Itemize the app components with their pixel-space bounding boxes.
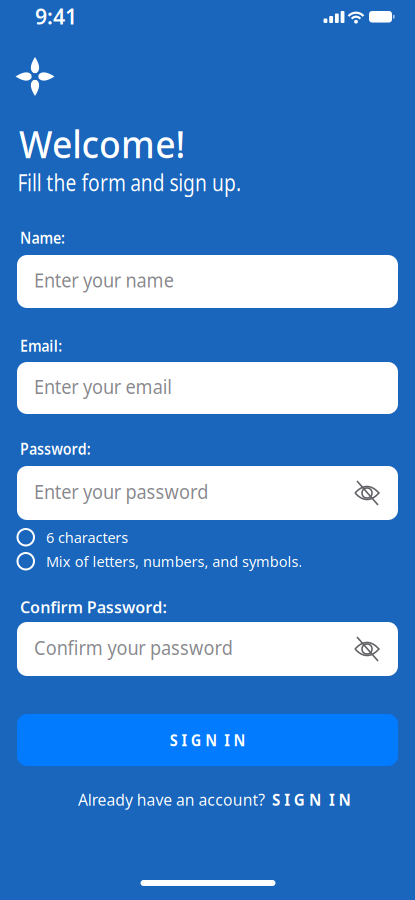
staticText: Email: bbox=[20, 335, 67, 356]
button[interactable]: Confirm your password bbox=[17, 622, 398, 676]
staticText: Mix of letters, numbers, and symbols. bbox=[46, 551, 305, 571]
button[interactable]: Enter your email bbox=[17, 362, 398, 414]
button[interactable]: Show password bbox=[354, 636, 380, 662]
button[interactable]: Show password bbox=[354, 480, 380, 506]
staticText: Fill the form and sign up. bbox=[17, 166, 296, 198]
staticText: S I G N I N bbox=[166, 729, 249, 751]
staticText: Name: bbox=[20, 227, 70, 248]
staticText: Enter your name bbox=[34, 266, 188, 293]
staticText: Enter your password bbox=[34, 478, 226, 504]
staticText: 9:41 bbox=[35, 2, 77, 30]
staticText: Already have an account? bbox=[78, 789, 269, 810]
staticText: Enter your email bbox=[34, 373, 186, 399]
staticText: Confirm your password bbox=[34, 634, 253, 660]
button[interactable]: Enter your password bbox=[17, 466, 398, 520]
staticText: Password: bbox=[20, 438, 99, 459]
button[interactable]: S I G N I N bbox=[272, 789, 355, 810]
button[interactable]: Enter your name bbox=[17, 255, 398, 308]
staticText: S I G N I N bbox=[272, 789, 355, 810]
staticText: Confirm Password: bbox=[20, 596, 165, 618]
button[interactable]: S I G N I N bbox=[17, 714, 398, 766]
staticText: 6 characters bbox=[46, 527, 129, 547]
staticText: Welcome! bbox=[19, 117, 200, 169]
